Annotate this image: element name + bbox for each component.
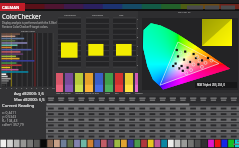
staticText: Current Reading — [2, 103, 35, 109]
button[interactable]: Colour patch strip — [0, 139, 239, 148]
staticText: Saturation — [92, 14, 104, 17]
staticText: Pantone ColorChecker® target colors. — [2, 25, 49, 29]
staticText: DeltaE 2000 — [21, 29, 35, 32]
staticText: Max dE2000: 6,5 — [14, 97, 45, 102]
button[interactable]: Measurement table — [46, 96, 239, 138]
staticText: Blue — [95, 92, 99, 94]
button[interactable] — [56, 73, 63, 92]
staticText: RGB Triplet: 255, 255, 0 — [197, 83, 226, 87]
staticText: 0 — [137, 64, 139, 67]
staticText: ColorChecker — [2, 12, 42, 20]
button[interactable] — [105, 73, 113, 92]
staticText: Luminance — [64, 14, 76, 17]
staticText: x: 0,4411 — [2, 110, 17, 115]
staticText: Avg dE2000: 3,6 — [14, 91, 44, 96]
staticText: Light Skin — [56, 92, 65, 94]
button[interactable] — [86, 18, 109, 67]
button[interactable] — [95, 73, 103, 92]
staticText: 7 — [36, 87, 38, 90]
staticText: Green — [105, 92, 111, 94]
button[interactable] — [85, 73, 93, 92]
staticText: 4 — [21, 87, 23, 90]
staticText: Display analysis is performed with the X… — [2, 21, 57, 25]
button[interactable] — [135, 73, 143, 92]
staticText: Yellow Grn — [75, 92, 84, 94]
staticText: 80 — [137, 27, 140, 30]
staticText: 6 — [31, 87, 33, 90]
staticText: 9 — [47, 87, 49, 90]
staticText: Yellow — [125, 92, 131, 94]
staticText: 100 — [137, 18, 141, 21]
button[interactable] — [65, 73, 73, 92]
button[interactable] — [75, 73, 83, 92]
button[interactable] — [113, 18, 136, 67]
staticText: Orange Yel — [85, 92, 95, 94]
staticText: y: 0,5343 — [2, 114, 17, 119]
button[interactable]: CalMAN — [0, 3, 239, 11]
button[interactable]: Measured colour swatch — [202, 19, 232, 46]
staticText: Hue — [119, 14, 124, 17]
button[interactable] — [58, 18, 81, 67]
staticText: fL: 104,43 — [2, 118, 18, 123]
staticText: 20 — [137, 54, 140, 57]
staticText: cd/m²: 357,79 — [2, 122, 24, 127]
staticText: 3 — [16, 87, 18, 90]
staticText: 0 — [0, 87, 2, 90]
button[interactable]: CIE 1931 chromaticity diagram — [138, 11, 239, 93]
staticText: CIE 1931 xy — [178, 11, 191, 14]
staticText: 8 — [42, 87, 44, 90]
staticText: Magenta — [135, 92, 143, 94]
staticText: 40 — [137, 45, 140, 48]
staticText: Purple — [65, 92, 71, 94]
staticText: Red — [115, 92, 119, 94]
staticText: 5 — [26, 87, 28, 90]
staticText: 2 — [11, 87, 13, 90]
button[interactable] — [125, 73, 133, 92]
staticText: 60 — [137, 36, 140, 39]
button[interactable] — [115, 73, 123, 92]
staticText: CALMAN — [2, 5, 20, 10]
staticText: 1 — [6, 87, 8, 90]
staticText: 10 — [52, 87, 55, 90]
